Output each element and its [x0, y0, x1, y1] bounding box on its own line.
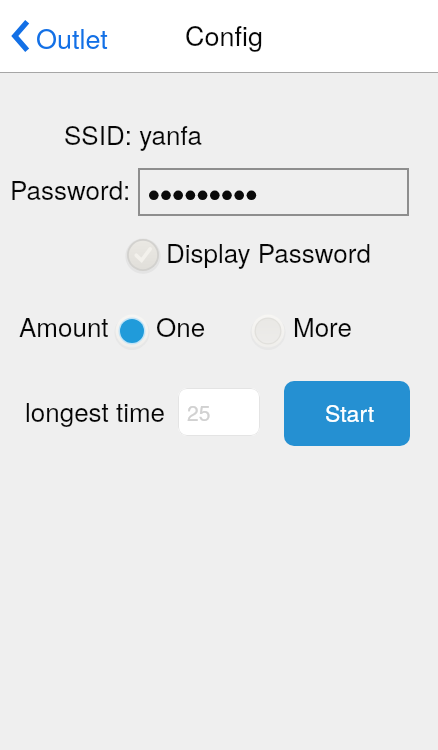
staticText: Password: — [10, 170, 131, 207]
staticText: SSID: yanfa — [64, 115, 202, 152]
staticText: One — [156, 307, 206, 344]
staticText: Amount — [19, 307, 109, 344]
button[interactable]: One — [112, 312, 208, 350]
staticText: More — [293, 307, 352, 344]
button[interactable]: 25 — [178, 388, 260, 436]
button[interactable] — [138, 168, 409, 216]
button[interactable]: Display password — [118, 234, 384, 276]
staticText: longest time — [25, 392, 166, 429]
staticText: Display Password — [166, 233, 371, 270]
button[interactable]: More — [248, 312, 356, 350]
other: Display password — [125, 237, 161, 273]
button[interactable]: Start — [284, 381, 410, 446]
staticText: Config — [185, 15, 264, 54]
staticText: 25 — [187, 397, 211, 427]
staticText: Start — [325, 396, 375, 429]
staticText: Outlet — [36, 18, 108, 57]
button[interactable]: Back to Outlet — [6, 8, 114, 64]
